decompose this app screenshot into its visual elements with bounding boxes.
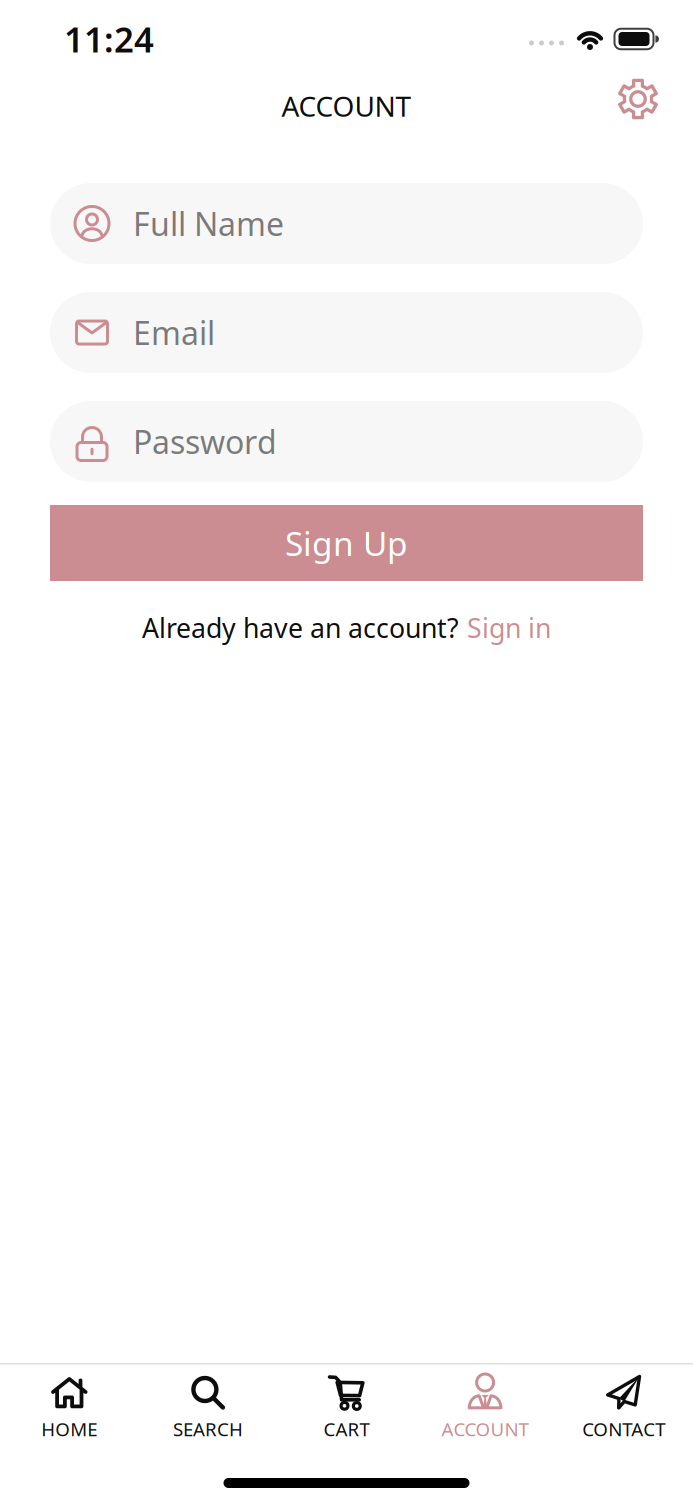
staticText: ACCOUNT [442,1416,529,1441]
staticText: Sign in [467,610,551,645]
staticText: CART [323,1416,369,1441]
button[interactable]: Full Name [50,183,643,264]
staticText: ACCOUNT [281,87,411,125]
button[interactable]: ACCOUNT [416,1373,554,1441]
button[interactable]: CONTACT [554,1373,693,1441]
staticText: Password [133,420,277,463]
staticText: CONTACT [582,1416,665,1441]
staticText: Email [133,311,215,354]
button[interactable]: Sign Up [50,505,643,581]
staticText: Already have an account? [142,610,459,645]
button[interactable]: SEARCH [139,1373,277,1441]
staticText: 11:24 [64,16,154,62]
button[interactable]: CART [277,1373,416,1441]
button[interactable]: Email [50,292,643,373]
staticText: SEARCH [173,1416,243,1441]
button[interactable]: Password [50,401,643,482]
button[interactable]: Settings [615,76,661,122]
staticText: Sign Up [285,521,408,565]
button[interactable]: Sign in [467,610,551,645]
button[interactable]: HOME [0,1373,139,1441]
staticText: HOME [41,1416,97,1441]
staticText: Full Name [133,202,284,245]
